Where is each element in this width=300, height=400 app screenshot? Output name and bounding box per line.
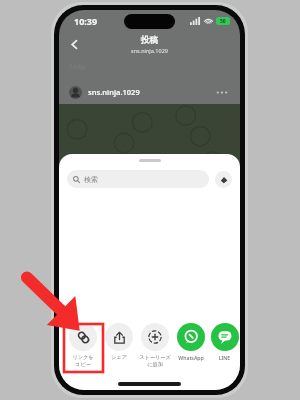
staticText: sns.ninja.1029	[131, 47, 168, 54]
other: Annotation arrow pointing to Copy link	[22, 274, 84, 332]
staticText: シェア	[101, 354, 137, 361]
staticText: 10:39	[74, 15, 98, 27]
staticText: 50	[220, 18, 226, 25]
staticText: WhatsApp	[173, 354, 209, 361]
button[interactable]: More options	[214, 85, 230, 99]
staticText: LINE	[209, 354, 240, 361]
button[interactable]: Back	[64, 34, 84, 54]
button[interactable]: WhatsApp	[173, 323, 209, 361]
button[interactable]: LINE	[209, 323, 240, 361]
button[interactable]: Share to other apps	[215, 171, 232, 188]
staticText: 投稿	[141, 35, 158, 46]
staticText: 5月8日	[70, 64, 86, 71]
button[interactable]: 検索	[67, 170, 209, 188]
button[interactable]: Copy link	[65, 323, 101, 367]
staticText: リンクを コピー	[65, 354, 101, 367]
button[interactable]: Add to stories	[137, 323, 173, 367]
staticText: sns.ninja.1029	[88, 87, 140, 97]
staticText: 検索	[84, 175, 98, 184]
staticText: ストーリーズ に追加	[137, 354, 173, 367]
button[interactable]: Share	[101, 323, 137, 361]
